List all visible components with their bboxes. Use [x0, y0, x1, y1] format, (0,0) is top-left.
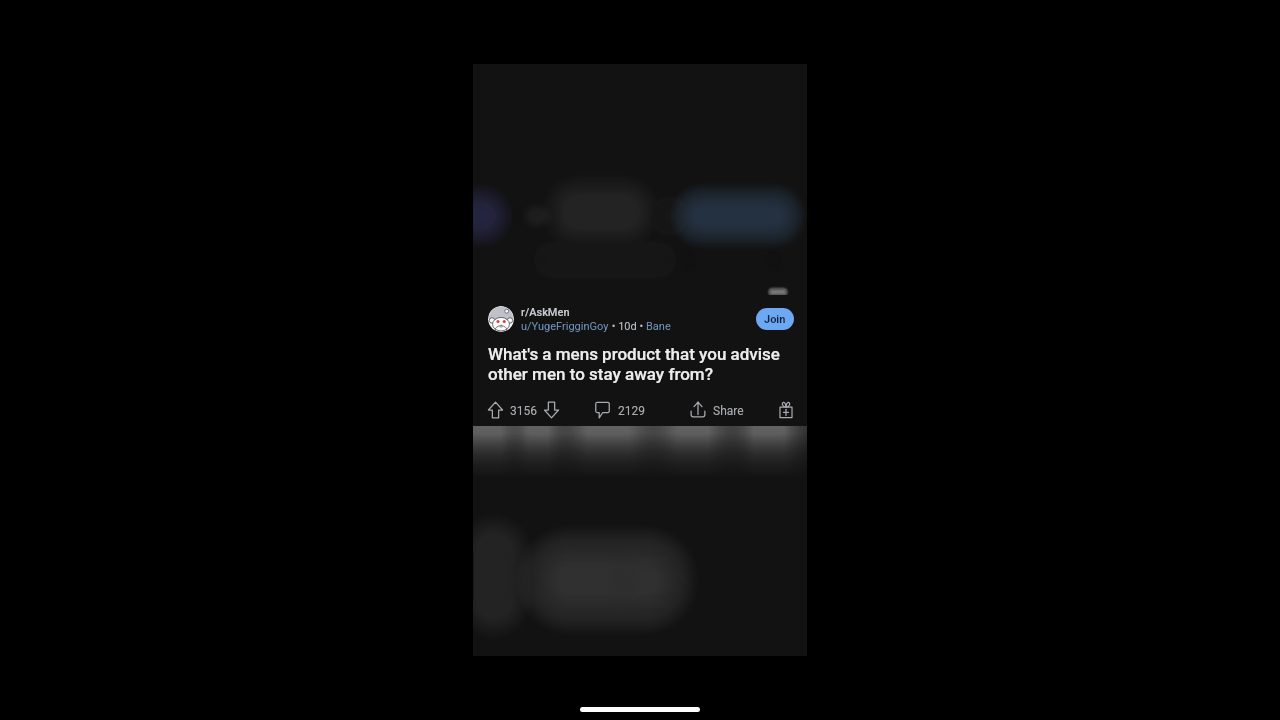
button[interactable]: 2129 [595, 401, 645, 419]
button[interactable]: Downvote [544, 401, 559, 419]
staticText: • 10d • [609, 320, 646, 332]
staticText: Bane [646, 320, 671, 332]
staticText: What's a mens product that you advise ot… [488, 344, 794, 384]
staticText: 3156 [510, 401, 537, 419]
button[interactable]: Upvote [488, 401, 503, 419]
staticText: Share [713, 401, 744, 419]
staticText: r/AskMen [521, 306, 570, 319]
button[interactable]: Join [756, 308, 794, 330]
button[interactable]: Share [690, 401, 744, 419]
button[interactable]: Award [779, 401, 793, 419]
staticText: 2129 [618, 401, 645, 419]
staticText: Join [764, 313, 786, 326]
staticText: u/YugeFrigginGoy [521, 320, 609, 332]
